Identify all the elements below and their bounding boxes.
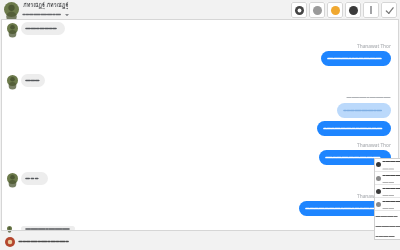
staticText: Thanawat Thor xyxy=(357,43,391,50)
button[interactable]: More options xyxy=(363,2,379,18)
button[interactable]: ภัทรณัฏฐ์ ภัทรณัฏฐ์ xyxy=(4,1,69,18)
button[interactable] xyxy=(7,22,399,35)
button[interactable] xyxy=(7,226,399,231)
button[interactable] xyxy=(374,198,400,210)
button[interactable] xyxy=(7,74,399,87)
button[interactable] xyxy=(374,185,400,197)
button[interactable]: Info xyxy=(291,2,307,18)
button[interactable] xyxy=(321,51,391,66)
button[interactable]: Star xyxy=(327,2,343,18)
button[interactable]: Mute xyxy=(345,2,361,18)
staticText: Thanawat Thor xyxy=(357,193,391,200)
staticText: Thanawat Thor xyxy=(357,142,391,149)
staticText: ภัทรณัฏฐ์ ภัทรณัฏฐ์ xyxy=(23,1,69,10)
button[interactable] xyxy=(317,121,391,136)
button[interactable]: Archive xyxy=(309,2,325,18)
button[interactable] xyxy=(299,201,391,216)
button[interactable] xyxy=(374,158,400,171)
button[interactable] xyxy=(374,172,400,184)
button[interactable] xyxy=(319,150,391,165)
button[interactable] xyxy=(7,172,399,185)
button[interactable]: Done xyxy=(381,2,397,18)
button[interactable] xyxy=(337,103,391,118)
button[interactable] xyxy=(5,233,400,250)
